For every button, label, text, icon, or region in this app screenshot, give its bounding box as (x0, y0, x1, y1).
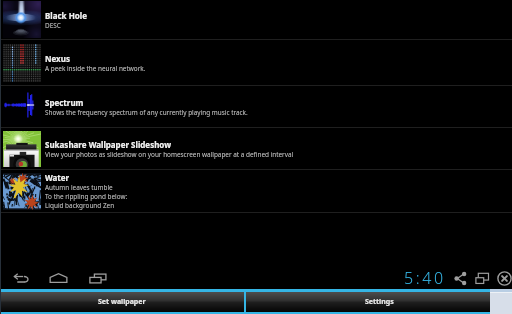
button[interactable]: Nexus (0, 40, 512, 85)
staticText: To the rippling pond below: (45, 192, 128, 201)
staticText: Sukashare Wallpaper Slideshow (45, 139, 172, 150)
button[interactable]: Home (44, 264, 72, 292)
staticText: Set wallpaper (98, 297, 146, 307)
staticText: Shows the frequency spectrum of any curr… (45, 108, 248, 117)
button[interactable]: Spectrum (0, 86, 512, 127)
staticText: View your photos as slideshow on your ho… (45, 150, 294, 159)
button[interactable]: Set wallpaper (0, 292, 244, 312)
button[interactable]: Sukashare Wallpaper Slideshow (0, 128, 512, 169)
button[interactable]: Water (0, 170, 512, 212)
staticText: Spectrum (45, 97, 84, 108)
staticText: Water (45, 172, 70, 183)
button[interactable]: Screen mirroring (472, 268, 492, 288)
button[interactable]: Settings (246, 292, 512, 312)
staticText: Nexus (45, 53, 70, 64)
button[interactable]: Close (494, 268, 512, 288)
button[interactable]: Share (450, 268, 470, 288)
staticText: Autumn leaves tumble (45, 183, 113, 192)
staticText: Liquid background Zen (45, 201, 115, 210)
staticText: 5:40 (404, 267, 446, 289)
staticText: Black Hole (45, 10, 87, 21)
staticText: Settings (365, 297, 394, 307)
button[interactable]: Back (7, 264, 35, 292)
button[interactable]: Recent apps (84, 264, 112, 292)
button[interactable]: Black Hole (0, 0, 512, 39)
staticText: A peek inside the neural network. (45, 64, 146, 73)
staticText: DESC (45, 21, 61, 30)
